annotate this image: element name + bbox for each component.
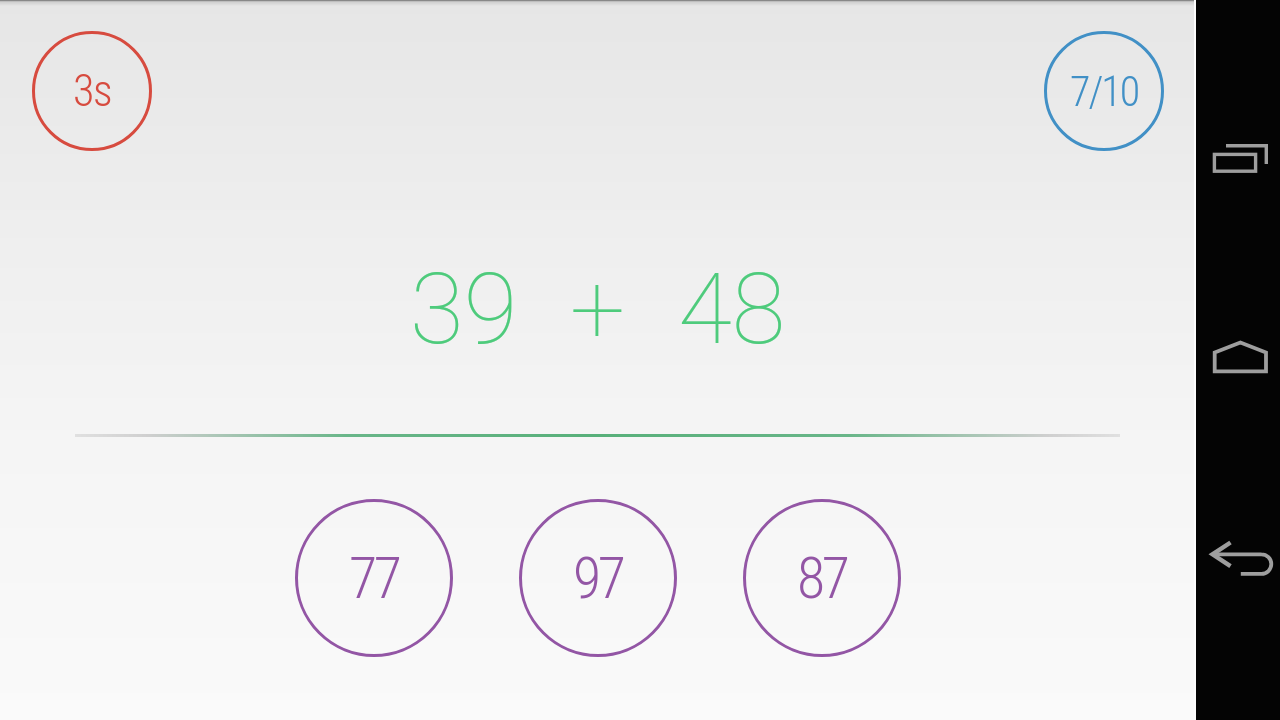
button[interactable]: 7/10 [1044,31,1164,151]
staticText: 48 [678,252,786,367]
button[interactable]: 97 [519,499,677,657]
staticText: + [570,252,626,367]
button[interactable]: 77 [295,499,453,657]
staticText: 77 [349,544,399,612]
staticText: 3s [73,65,112,117]
staticText: 97 [573,544,623,612]
staticText: 39 [410,252,518,367]
button[interactable] [1212,130,1268,186]
button[interactable]: 3s [32,31,152,151]
button[interactable] [1212,329,1268,385]
button[interactable] [1212,530,1268,586]
staticText: 7/10 [1070,67,1139,116]
button[interactable]: 87 [743,499,901,657]
staticText: 87 [797,544,847,612]
